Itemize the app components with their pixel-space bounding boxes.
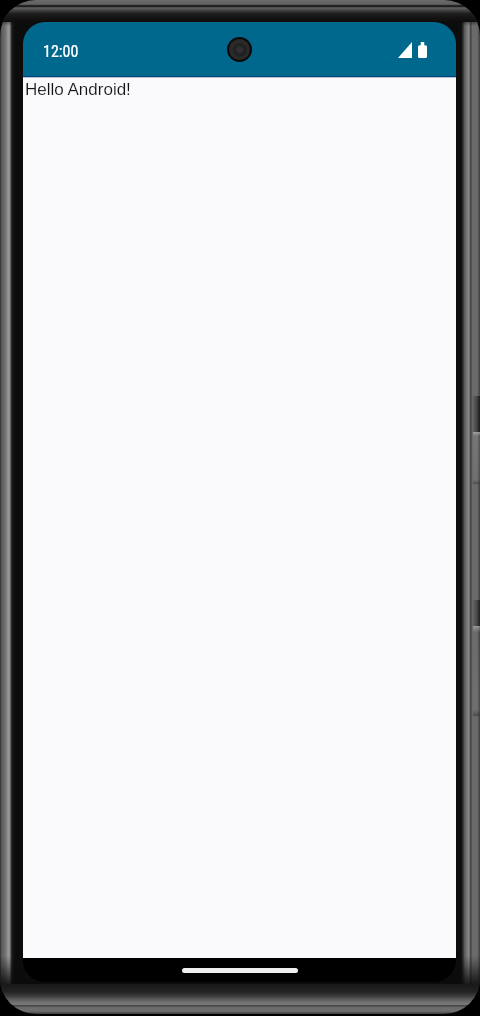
staticText: 12:00 xyxy=(43,42,79,61)
button[interactable]: Home gesture bar xyxy=(23,958,456,982)
staticText: Hello Android! xyxy=(25,80,131,99)
button[interactable]: Volume button xyxy=(473,626,480,716)
button[interactable]: Power button xyxy=(473,432,480,484)
